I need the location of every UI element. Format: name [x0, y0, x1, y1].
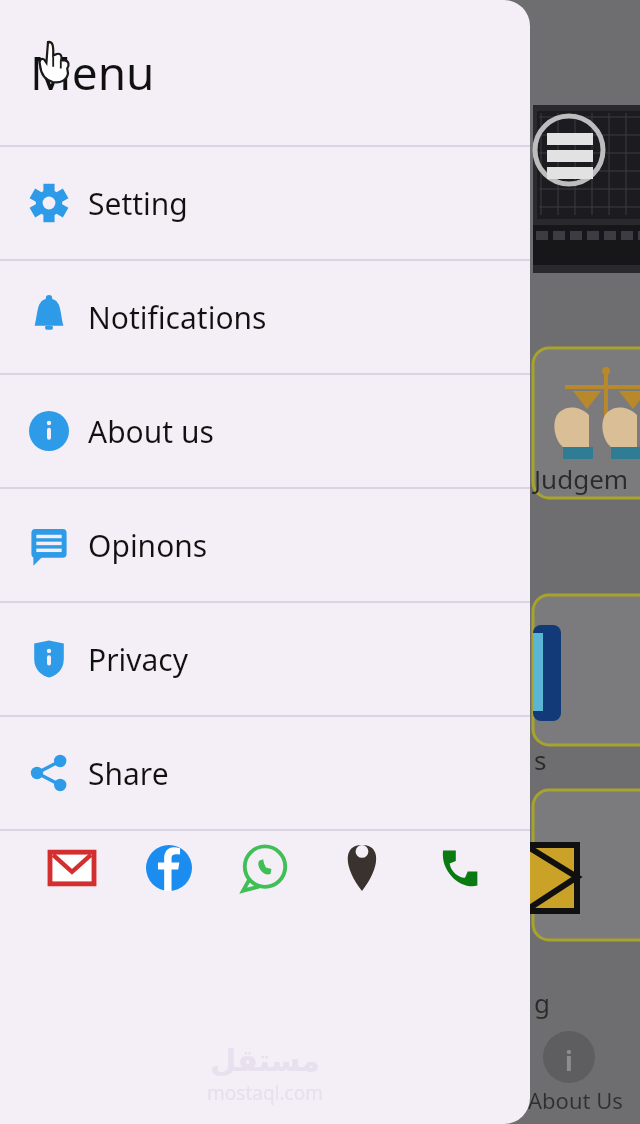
button[interactable]: Share [0, 717, 530, 829]
button[interactable]: Location [334, 840, 390, 896]
staticText: About us [88, 411, 214, 452]
button[interactable]: Email [44, 840, 100, 896]
staticText: مستقل [210, 1043, 320, 1078]
staticText: Share [88, 753, 169, 794]
button[interactable]: WhatsApp [237, 840, 293, 896]
button[interactable]: Notifications [0, 261, 530, 373]
staticText: g [534, 985, 550, 1020]
staticText: Notifications [88, 297, 267, 338]
staticText: s [534, 742, 547, 777]
button[interactable]: About us [0, 375, 530, 487]
button[interactable]: Call [430, 840, 486, 896]
staticText: About Us [528, 1085, 623, 1115]
button[interactable]: Setting [0, 147, 530, 259]
staticText: Menu [30, 41, 155, 104]
button[interactable]: Privacy [0, 603, 530, 715]
staticText: Judgem [534, 461, 629, 496]
staticText: mostaql.com [207, 1080, 323, 1106]
staticText: i [565, 1043, 573, 1078]
button[interactable]: Opinons [0, 489, 530, 601]
button[interactable]: Facebook [141, 840, 197, 896]
staticText: Setting [88, 183, 188, 224]
staticText: Opinons [88, 525, 208, 566]
staticText: Privacy [88, 639, 189, 680]
